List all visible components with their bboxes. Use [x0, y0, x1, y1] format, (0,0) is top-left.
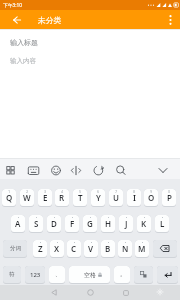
staticText: 6 [97, 189, 100, 194]
staticText: X [54, 243, 60, 254]
staticText: I [133, 192, 136, 203]
staticText: O [148, 192, 155, 203]
staticText: Y [96, 192, 101, 203]
button[interactable] [118, 285, 134, 300]
staticText: S [34, 218, 39, 229]
button[interactable]: K [137, 215, 151, 233]
button[interactable]: X [50, 240, 64, 258]
staticText: U [113, 192, 119, 203]
button[interactable] [9, 13, 25, 26]
staticText: 8 [133, 189, 136, 194]
staticText: T [78, 192, 83, 203]
button[interactable] [46, 285, 62, 300]
staticText: E [43, 192, 48, 203]
button[interactable]: R [55, 189, 69, 207]
staticText: 空格 [84, 271, 96, 279]
button[interactable]: S [29, 215, 43, 233]
button[interactable] [153, 240, 177, 258]
button[interactable]: F [65, 215, 79, 233]
staticText: 。 [120, 270, 126, 278]
button[interactable]: A [11, 215, 25, 233]
button[interactable]: E [38, 189, 52, 207]
staticText: G [87, 218, 93, 229]
button[interactable]: 分词 [3, 240, 27, 258]
button[interactable]: 。 [114, 266, 130, 284]
staticText: Z [38, 243, 43, 254]
staticText: J [125, 218, 128, 229]
staticText: H [105, 218, 112, 229]
staticText: 2 [26, 189, 29, 194]
staticText: 1 [8, 189, 11, 194]
button[interactable]: N [118, 240, 132, 258]
staticText: 下午3:10 [3, 2, 23, 9]
staticText: 3 [44, 189, 47, 194]
button[interactable]: D [47, 215, 61, 233]
staticText: 分词 [10, 245, 21, 252]
button[interactable]: U [109, 189, 123, 207]
staticText: Q [6, 192, 13, 203]
button[interactable] [134, 266, 153, 284]
staticText: F [70, 218, 75, 229]
button[interactable]: 123 [25, 266, 45, 284]
button[interactable]: 、 [49, 266, 65, 284]
staticText: N [122, 243, 129, 254]
staticText: 7 [115, 189, 118, 194]
button[interactable]: B [101, 240, 115, 258]
staticText: P [167, 192, 172, 203]
button[interactable]: 输入标题 [0, 36, 180, 52]
button[interactable] [82, 285, 98, 300]
staticText: C [71, 243, 77, 254]
staticText: V [88, 243, 94, 254]
staticText: 符 [9, 271, 15, 278]
button[interactable]: T [73, 189, 87, 207]
button[interactable] [157, 266, 178, 284]
staticText: 输入标题 [10, 38, 38, 47]
staticText: R [59, 192, 65, 203]
staticText: 4 [61, 189, 64, 194]
button[interactable]: 符 [3, 266, 21, 284]
staticText: A [15, 218, 21, 229]
button[interactable]: C [67, 240, 81, 258]
staticText: K [141, 218, 147, 229]
button[interactable]: P [162, 189, 176, 207]
staticText: D [51, 218, 57, 229]
staticText: 5 [79, 189, 82, 194]
staticText: B [105, 243, 111, 254]
staticText: 未分类 [38, 15, 62, 25]
button[interactable]: I [127, 189, 141, 207]
button[interactable]: G [83, 215, 97, 233]
button[interactable]: 输入内容 [0, 54, 180, 70]
button[interactable] [164, 13, 177, 26]
staticText: 123 [30, 271, 41, 279]
button[interactable]: V [84, 240, 98, 258]
staticText: W [23, 192, 31, 203]
staticText: L [160, 218, 165, 229]
staticText: M [138, 243, 146, 254]
button[interactable]: Y [91, 189, 105, 207]
staticText: 输入内容 [10, 57, 36, 65]
staticText: 、 [55, 270, 61, 278]
button[interactable]: Q [2, 189, 16, 207]
button[interactable]: W [20, 189, 34, 207]
button[interactable]: M [135, 240, 149, 258]
staticText: 9 [150, 189, 153, 194]
staticText: 0 [168, 189, 171, 194]
button[interactable]: J [119, 215, 133, 233]
button[interactable]: Z [33, 240, 47, 258]
button[interactable]: O [144, 189, 158, 207]
button[interactable]: 空格 [69, 266, 110, 284]
button[interactable]: L [155, 215, 169, 233]
button[interactable]: H [101, 215, 115, 233]
